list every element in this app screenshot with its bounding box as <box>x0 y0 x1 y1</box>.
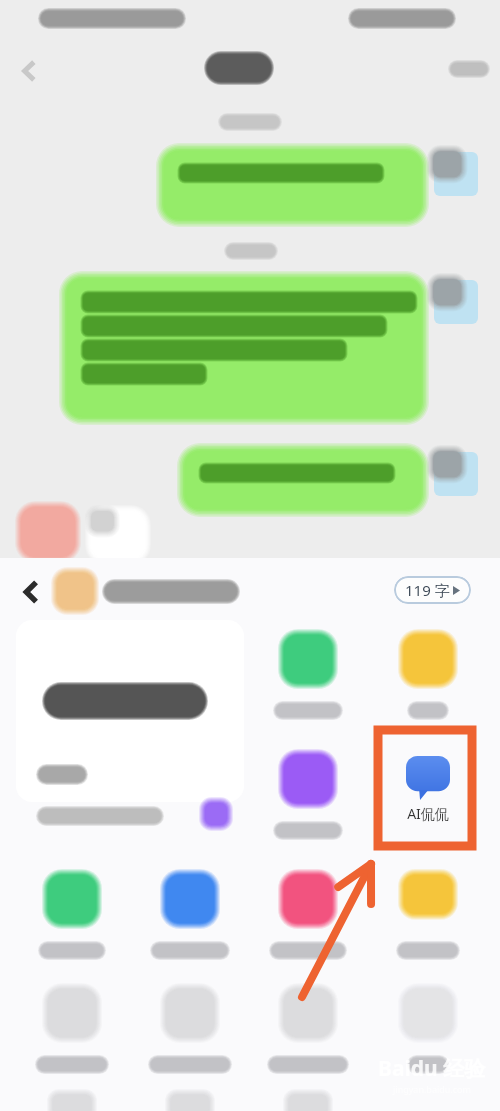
button[interactable]: Grid item <box>23 876 121 962</box>
button[interactable]: Back <box>10 570 52 614</box>
staticText: AI侃侃 <box>407 804 449 823</box>
button[interactable]: Grid item <box>379 876 477 962</box>
button[interactable]: Grid item <box>259 876 357 962</box>
button[interactable]: AI侃侃 <box>379 756 477 842</box>
staticText: Baidu 经验 <box>378 1054 486 1083</box>
button[interactable]: 119 字 <box>394 576 471 604</box>
button[interactable]: Grid item <box>379 636 477 722</box>
button[interactable]: Grid item <box>141 990 239 1076</box>
button[interactable]: Grid item <box>259 636 357 722</box>
button[interactable]: Grid item <box>259 756 357 842</box>
button[interactable]: Grid item <box>23 990 121 1076</box>
button[interactable]: Grid item <box>259 990 357 1076</box>
button[interactable]: Grid item <box>379 990 477 1076</box>
staticText: 119 字 <box>405 580 450 600</box>
button[interactable]: Grid item <box>141 876 239 962</box>
